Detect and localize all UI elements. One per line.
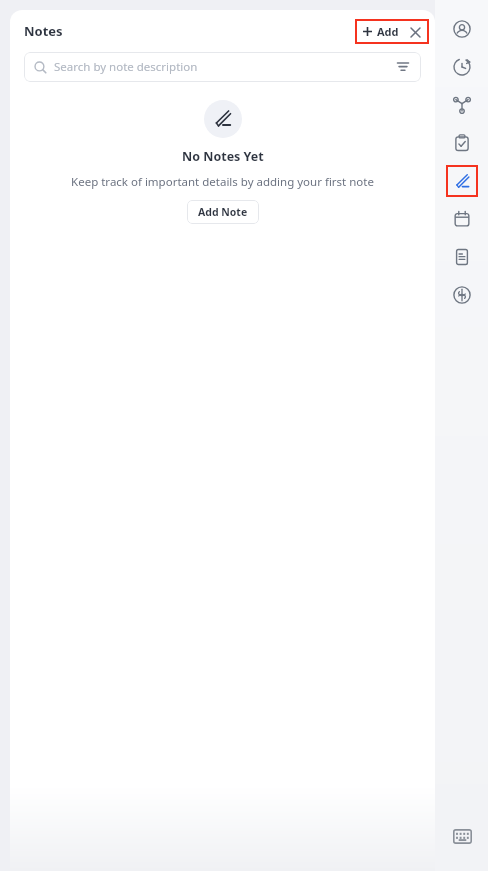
button[interactable]: Close	[408, 25, 422, 39]
button[interactable]: Search by note description	[24, 52, 421, 82]
button[interactable]: Tasks	[446, 127, 478, 159]
button[interactable]: Keyboard	[447, 821, 477, 851]
button[interactable]: Share	[446, 89, 478, 121]
button[interactable]: Notes	[446, 165, 478, 197]
staticText: Search by note description	[54, 59, 198, 75]
staticText: Add Note	[198, 205, 248, 219]
staticText: Add	[377, 24, 399, 39]
button[interactable]: Account	[446, 13, 478, 45]
button[interactable]: Payments	[446, 279, 478, 311]
staticText: Keep track of important details by addin…	[71, 174, 374, 190]
button[interactable]: Add Note	[187, 200, 259, 224]
button[interactable]: History	[446, 51, 478, 83]
button[interactable]: Calendar	[446, 203, 478, 235]
button[interactable]: Add	[355, 19, 429, 44]
button[interactable]: Documents	[446, 241, 478, 273]
staticText: Notes	[24, 22, 63, 40]
button[interactable]: Filter	[395, 59, 411, 75]
staticText: No Notes Yet	[182, 148, 264, 165]
